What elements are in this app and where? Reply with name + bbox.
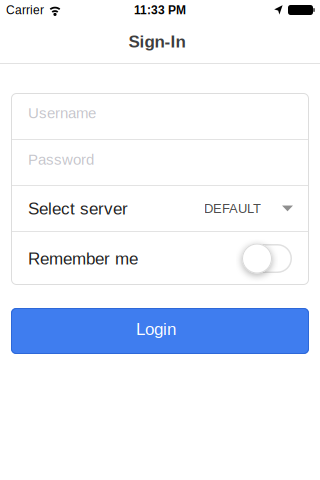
- button[interactable]: Password: [11, 140, 309, 185]
- button[interactable]: Login: [11, 308, 309, 354]
- staticText: 11:33 PM: [134, 3, 186, 17]
- button[interactable]: Username: [11, 93, 309, 139]
- staticText: Username: [28, 105, 96, 121]
- button[interactable]: Select server: [11, 186, 309, 231]
- staticText: DEFAULT: [204, 201, 261, 216]
- staticText: Remember me: [28, 249, 138, 268]
- staticText: Login: [136, 319, 176, 338]
- staticText: Carrier: [6, 3, 44, 17]
- staticText: Sign-In: [128, 32, 185, 51]
- button[interactable]: Remember me: [243, 243, 292, 274]
- staticText: Password: [28, 151, 94, 168]
- staticText: Select server: [28, 199, 128, 218]
